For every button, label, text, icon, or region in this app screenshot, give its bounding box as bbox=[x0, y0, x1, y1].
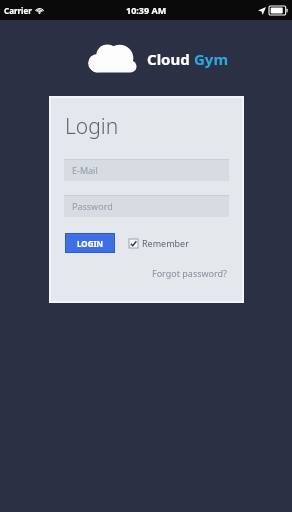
button[interactable]: Forgot password? bbox=[150, 265, 230, 281]
button[interactable]: E-Mail bbox=[64, 159, 229, 181]
button[interactable]: LOGIN bbox=[66, 234, 114, 252]
staticText: Cloud bbox=[147, 49, 190, 69]
staticText: Gym bbox=[194, 49, 229, 69]
staticText: Forgot password? bbox=[152, 267, 228, 279]
button[interactable]: Remember me checkbox bbox=[129, 237, 189, 249]
other: Remember me checkbox bbox=[129, 239, 138, 248]
staticText: 10:39 AM bbox=[126, 4, 167, 16]
staticText: Password bbox=[72, 200, 113, 212]
staticText: Remember bbox=[142, 237, 189, 249]
staticText: LOGIN bbox=[77, 238, 104, 249]
button[interactable]: Password bbox=[64, 195, 229, 217]
staticText: Login bbox=[65, 112, 119, 141]
staticText: E-Mail bbox=[72, 164, 98, 176]
staticText: Carrier bbox=[4, 5, 32, 16]
